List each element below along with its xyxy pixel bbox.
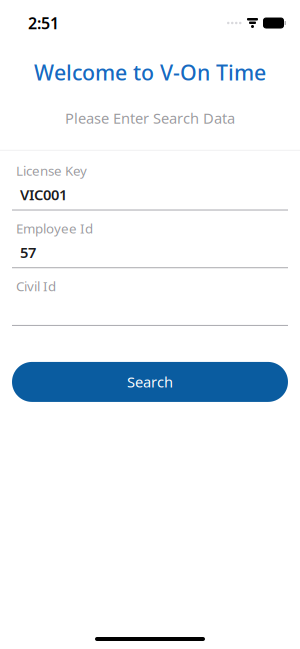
staticText: License Key [16, 162, 87, 179]
staticText: 57 [20, 242, 36, 262]
staticText: Employee Id [16, 219, 93, 237]
staticText: Please Enter Search Data [65, 108, 235, 128]
staticText: Search [127, 372, 173, 392]
staticText: VIC001 [20, 185, 67, 204]
staticText: Civil Id [16, 277, 56, 295]
button[interactable]: Search [12, 362, 288, 402]
staticText: 2:51 [28, 12, 59, 34]
staticText: Welcome to V-On Time [34, 58, 266, 86]
